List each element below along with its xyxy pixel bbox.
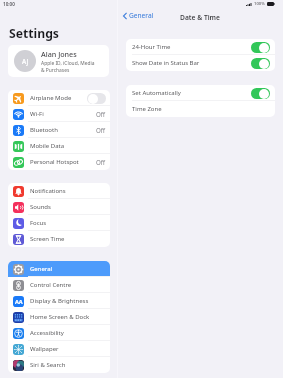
button[interactable]: General: [8, 261, 110, 277]
staticText: Accessibility: [30, 329, 106, 337]
button[interactable]: Set Automatically: [126, 85, 275, 101]
staticText: Wi-Fi: [30, 110, 96, 118]
button[interactable]: Siri & Search: [8, 357, 110, 373]
staticText: Mobile Data: [30, 142, 106, 150]
button[interactable]: Wi-Fi: [8, 106, 110, 122]
button[interactable]: Bluetooth: [8, 122, 110, 138]
staticText: General: [30, 265, 106, 273]
button[interactable]: Accessibility: [8, 325, 110, 341]
staticText: Control Centre: [30, 281, 106, 289]
staticText: Off: [96, 126, 106, 134]
staticText: Display & Brightness: [30, 297, 106, 305]
staticText: Home Screen & Dock: [30, 313, 106, 321]
button[interactable]: 24-Hour Time: [126, 39, 275, 55]
button[interactable]: Airplane Mode: [8, 90, 110, 106]
staticText: Show Date in Status Bar: [132, 59, 251, 67]
staticText: Alan Jones: [41, 49, 77, 59]
button[interactable]: Focus: [8, 215, 110, 231]
staticText: Siri & Search: [30, 361, 106, 369]
button[interactable]: Switch on: [251, 58, 270, 69]
button[interactable]: Home Screen & Dock: [8, 309, 110, 325]
staticText: 10:00: [3, 1, 15, 7]
button[interactable]: Wallpaper: [8, 341, 110, 357]
staticText: 100%: [254, 1, 265, 7]
staticText: General: [129, 11, 154, 20]
button[interactable]: AA: [8, 293, 110, 309]
staticText: Sounds: [30, 203, 106, 211]
button[interactable]: Sounds: [8, 199, 110, 215]
button[interactable]: Control Centre: [8, 277, 110, 293]
staticText: Date & Time: [117, 13, 283, 22]
staticText: Notifications: [30, 187, 106, 195]
staticText: Screen Time: [30, 235, 106, 243]
button[interactable]: Notifications: [8, 183, 110, 199]
staticText: Settings: [9, 25, 59, 42]
button[interactable]: Mobile Data: [8, 138, 110, 154]
staticText: Personal Hotspot: [30, 158, 96, 166]
staticText: AA: [15, 298, 23, 306]
button[interactable]: Show Date in Status Bar: [126, 55, 275, 71]
staticText: Apple ID, iCloud, Media & Purchases: [41, 60, 95, 74]
staticText: 24-Hour Time: [132, 43, 251, 51]
button[interactable]: General: [121, 10, 156, 21]
staticText: Wallpaper: [30, 345, 106, 353]
staticText: AJ: [22, 57, 29, 66]
staticText: Off: [96, 110, 106, 118]
button[interactable]: Screen Time: [8, 231, 110, 247]
staticText: Focus: [30, 219, 106, 227]
button[interactable]: Switch on: [251, 42, 270, 53]
button[interactable]: Time Zone: [126, 101, 275, 117]
staticText: Airplane Mode: [30, 94, 87, 102]
button[interactable]: AJ: [8, 45, 109, 77]
staticText: Time Zone: [132, 105, 270, 113]
staticText: Bluetooth: [30, 126, 96, 134]
button[interactable]: Personal Hotspot: [8, 154, 110, 170]
button[interactable]: Switch off: [87, 93, 106, 104]
staticText: Off: [96, 158, 106, 166]
button[interactable]: Switch on: [251, 88, 270, 99]
staticText: Set Automatically: [132, 89, 251, 97]
